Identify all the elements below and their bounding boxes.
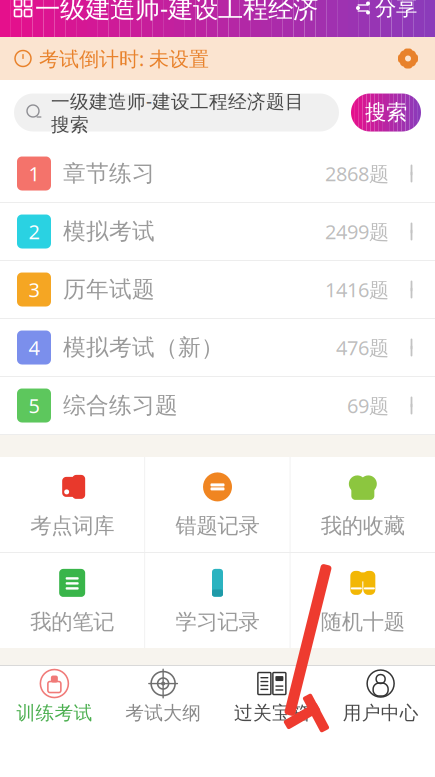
staticText: 考试倒计时: 未设置 (39, 45, 209, 72)
staticText: 476题 (336, 334, 389, 361)
staticText: 学习记录 (175, 609, 259, 635)
staticText: 分享 (375, 0, 417, 21)
staticText: 错题记录 (175, 513, 259, 539)
staticText: 一级建造师-建设工程经济 (35, 0, 318, 25)
staticText: 过关宝箱 (234, 701, 310, 724)
staticText: 3 (28, 276, 39, 303)
button[interactable]: 随机十题 (291, 553, 435, 648)
staticText: 我的收藏 (321, 513, 405, 539)
staticText: 训练考试 (16, 701, 92, 724)
staticText: 考点词库 (30, 513, 114, 539)
staticText: 一级建造师-建设工程经济题目搜索 (51, 89, 304, 136)
staticText: 模拟考试（新） (63, 334, 224, 361)
staticText: 模拟考试 (63, 218, 155, 245)
button[interactable]: 搜索 (351, 93, 421, 131)
staticText: 1 (28, 160, 39, 187)
button[interactable]: 4 (0, 319, 435, 377)
button[interactable]: 用户中心 (326, 665, 435, 727)
staticText: 综合练习题 (63, 392, 178, 419)
staticText: 随机十题 (321, 609, 405, 635)
staticText: 69题 (347, 392, 389, 419)
staticText: 2499题 (325, 218, 389, 245)
staticText: 章节练习 (63, 160, 155, 187)
button[interactable]: 3 (0, 261, 435, 319)
button[interactable]: 考试大纲 (109, 665, 218, 727)
button[interactable]: 2 (0, 203, 435, 261)
staticText: 1416题 (325, 276, 389, 303)
button[interactable]: 学习记录 (145, 553, 290, 648)
button[interactable]: 训练考试 (0, 665, 109, 727)
button[interactable]: 一级建造师-建设工程经济题目搜索 (14, 93, 339, 131)
staticText: 2868题 (325, 160, 389, 187)
staticText: 4 (28, 334, 39, 361)
button[interactable]: 设置 (395, 45, 421, 71)
staticText: 我的笔记 (30, 609, 114, 635)
staticText: 用户中心 (343, 701, 419, 724)
button[interactable]: 过关宝箱 (217, 665, 326, 727)
button[interactable]: 我的笔记 (0, 553, 144, 648)
button[interactable]: 分享 (349, 0, 421, 27)
staticText: 5 (28, 392, 39, 419)
staticText: 搜索 (365, 99, 407, 126)
button[interactable]: 5 (0, 377, 435, 435)
button[interactable]: 1 (0, 145, 435, 203)
button[interactable]: 考点词库 (0, 457, 144, 552)
staticText: 2 (28, 218, 39, 245)
button[interactable]: 错题记录 (145, 457, 290, 552)
staticText: 考试大纲 (125, 701, 201, 724)
staticText: 历年试题 (63, 276, 155, 303)
button[interactable]: 我的收藏 (291, 457, 435, 552)
